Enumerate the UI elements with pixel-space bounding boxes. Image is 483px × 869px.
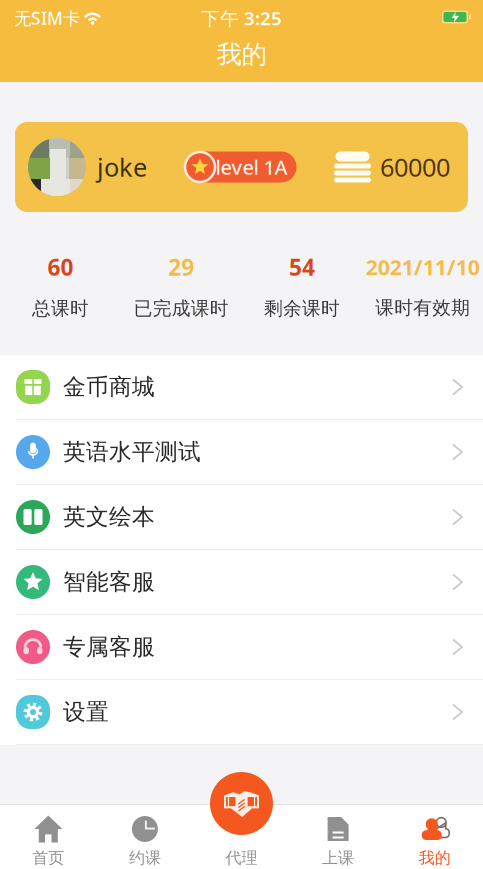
button[interactable]: 约课 [97,805,193,869]
staticText: 专属客服 [63,633,155,661]
staticText: 2021/11/10 [366,253,480,281]
staticText: 54 [289,252,315,282]
staticText: 60000 [380,150,450,184]
staticText: 已完成课时 [134,297,229,320]
button[interactable]: 首页 [0,805,97,869]
button[interactable]: 上课 [290,805,386,869]
staticText: level 1A [215,154,287,180]
button[interactable]: 金币商城 [0,355,483,420]
staticText: 我的 [216,39,266,70]
staticText: 上课 [322,848,354,868]
staticText: 英文绘本 [63,503,155,531]
staticText: 课时有效期 [375,296,470,319]
staticText: 总课时 [32,297,89,320]
staticText: 我的 [419,848,451,868]
staticText: 剩余课时 [264,297,340,320]
staticText: 代理 [225,848,257,868]
button[interactable]: 我的 [386,805,483,869]
staticText: 设置 [63,698,109,726]
button[interactable]: 英文绘本 [0,485,483,550]
button[interactable]: 代理 [210,772,273,835]
staticText: 金币商城 [63,373,155,401]
staticText: 英语水平测试 [63,438,201,466]
staticText: 首页 [32,848,64,868]
button[interactable]: 智能客服 [0,550,483,615]
staticText: 无SIM卡 [14,6,80,29]
button[interactable]: 设置 [0,680,483,745]
staticText: 29 [168,252,194,282]
staticText: joke [97,150,147,184]
staticText: 智能客服 [63,568,155,596]
button[interactable]: 英语水平测试 [0,420,483,485]
staticText: 下午 3:25 [201,6,282,30]
staticText: 60 [47,252,73,282]
button[interactable]: 专属客服 [0,615,483,680]
staticText: 约课 [129,848,161,868]
button[interactable]: 代理 [193,805,290,869]
